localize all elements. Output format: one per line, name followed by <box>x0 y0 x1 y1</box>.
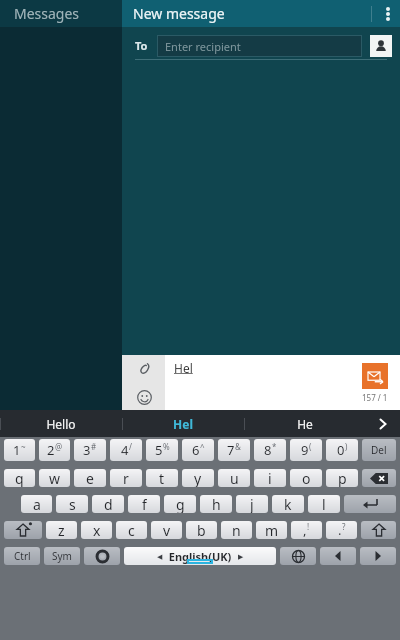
staticText: u <box>230 469 239 487</box>
button[interactable]: . <box>326 521 357 539</box>
button[interactable]: f <box>128 495 160 513</box>
button[interactable]: b <box>186 521 217 539</box>
button[interactable]: w <box>39 469 70 487</box>
button[interactable]: Del <box>362 439 396 461</box>
button[interactable]: 5 <box>146 439 178 461</box>
button[interactable]: h <box>200 495 232 513</box>
button[interactable]: l <box>308 495 340 513</box>
button[interactable]: d <box>92 495 124 513</box>
button[interactable]: key <box>361 521 396 539</box>
button[interactable]: key <box>344 495 396 513</box>
button[interactable]: 2 <box>39 439 70 461</box>
staticText: ( <box>309 441 312 452</box>
button[interactable]: 1 <box>4 439 35 461</box>
staticText: To <box>135 38 148 53</box>
button[interactable]: 8 <box>254 439 286 461</box>
button[interactable]: Send <box>362 363 388 389</box>
button[interactable]: e <box>74 469 106 487</box>
button[interactable]: j <box>236 495 268 513</box>
button[interactable]: key <box>362 469 396 487</box>
button[interactable]: Sym <box>44 547 80 565</box>
button[interactable]: Messages <box>0 0 122 27</box>
button[interactable]: Attach <box>131 355 157 381</box>
staticText: * <box>272 441 277 452</box>
button[interactable]: a <box>21 495 52 513</box>
button[interactable]: Emoji <box>131 384 157 410</box>
button[interactable]: 7 <box>218 439 250 461</box>
staticText: y <box>194 469 202 487</box>
staticText: 8 <box>264 441 272 459</box>
staticText: n <box>232 521 241 539</box>
button[interactable]: key <box>4 521 42 539</box>
button[interactable]: key <box>280 547 316 565</box>
staticText: v <box>163 521 171 539</box>
staticText: Sym <box>52 549 72 563</box>
staticText: e <box>86 469 94 487</box>
button[interactable]: t <box>146 469 178 487</box>
button[interactable]: More suggestions <box>366 410 400 437</box>
staticText: ◀ <box>157 553 163 561</box>
staticText: ) <box>345 441 348 452</box>
staticText: / <box>129 441 132 452</box>
staticText: ▶ <box>238 553 244 561</box>
button[interactable]: More options <box>376 0 400 27</box>
staticText: w <box>49 469 61 487</box>
button[interactable]: 3 <box>74 439 106 461</box>
button[interactable]: p <box>326 469 358 487</box>
button[interactable]: i <box>254 469 286 487</box>
staticText: m <box>265 521 279 539</box>
button[interactable]: 9 <box>290 439 322 461</box>
button[interactable]: key <box>84 547 120 565</box>
staticText: ! <box>307 521 310 532</box>
button[interactable]: q <box>4 469 35 487</box>
staticText: 9 <box>301 441 309 459</box>
staticText: Del <box>371 443 387 457</box>
staticText: 157 / 1 <box>362 392 388 403</box>
button[interactable]: 0 <box>326 439 358 461</box>
button[interactable]: Ctrl <box>4 547 40 565</box>
staticText: He <box>297 416 313 432</box>
staticText: ? <box>342 521 346 532</box>
staticText: b <box>197 521 206 539</box>
button[interactable]: v <box>151 521 182 539</box>
staticText: j <box>250 495 254 513</box>
staticText: # <box>91 441 97 452</box>
button[interactable]: key <box>320 547 356 565</box>
button[interactable]: x <box>81 521 112 539</box>
staticText: . <box>338 521 342 539</box>
button[interactable]: 4 <box>110 439 142 461</box>
staticText: l <box>322 495 326 513</box>
button[interactable]: o <box>290 469 322 487</box>
staticText: q <box>15 469 24 487</box>
button[interactable]: u <box>218 469 250 487</box>
button[interactable]: y <box>182 469 214 487</box>
button[interactable]: Hello <box>0 410 122 437</box>
button[interactable]: s <box>56 495 88 513</box>
button[interactable]: g <box>164 495 196 513</box>
button[interactable]: He <box>244 410 366 437</box>
staticText: , <box>303 521 307 539</box>
staticText: & <box>235 441 241 452</box>
staticText: 4 <box>121 441 129 459</box>
staticText: Enter recipient <box>165 39 241 54</box>
staticText: Ctrl <box>14 549 31 563</box>
staticText: 1 <box>13 441 21 459</box>
staticText: h <box>212 495 221 513</box>
button[interactable]: Add contact <box>370 35 392 57</box>
button[interactable]: c <box>116 521 147 539</box>
button[interactable]: ◀ <box>124 547 276 565</box>
button[interactable]: , <box>291 521 322 539</box>
button[interactable]: z <box>46 521 77 539</box>
button[interactable]: key <box>360 547 396 565</box>
button[interactable]: n <box>221 521 252 539</box>
button[interactable]: m <box>256 521 287 539</box>
button[interactable]: Enter recipient <box>157 35 362 57</box>
button[interactable]: r <box>110 469 142 487</box>
button[interactable]: Hel <box>165 355 350 410</box>
staticText: 5 <box>155 441 163 459</box>
staticText: @ <box>55 441 63 452</box>
button[interactable]: k <box>272 495 304 513</box>
staticText: k <box>284 495 292 513</box>
button[interactable]: Hel <box>122 410 244 437</box>
button[interactable]: 6 <box>182 439 214 461</box>
